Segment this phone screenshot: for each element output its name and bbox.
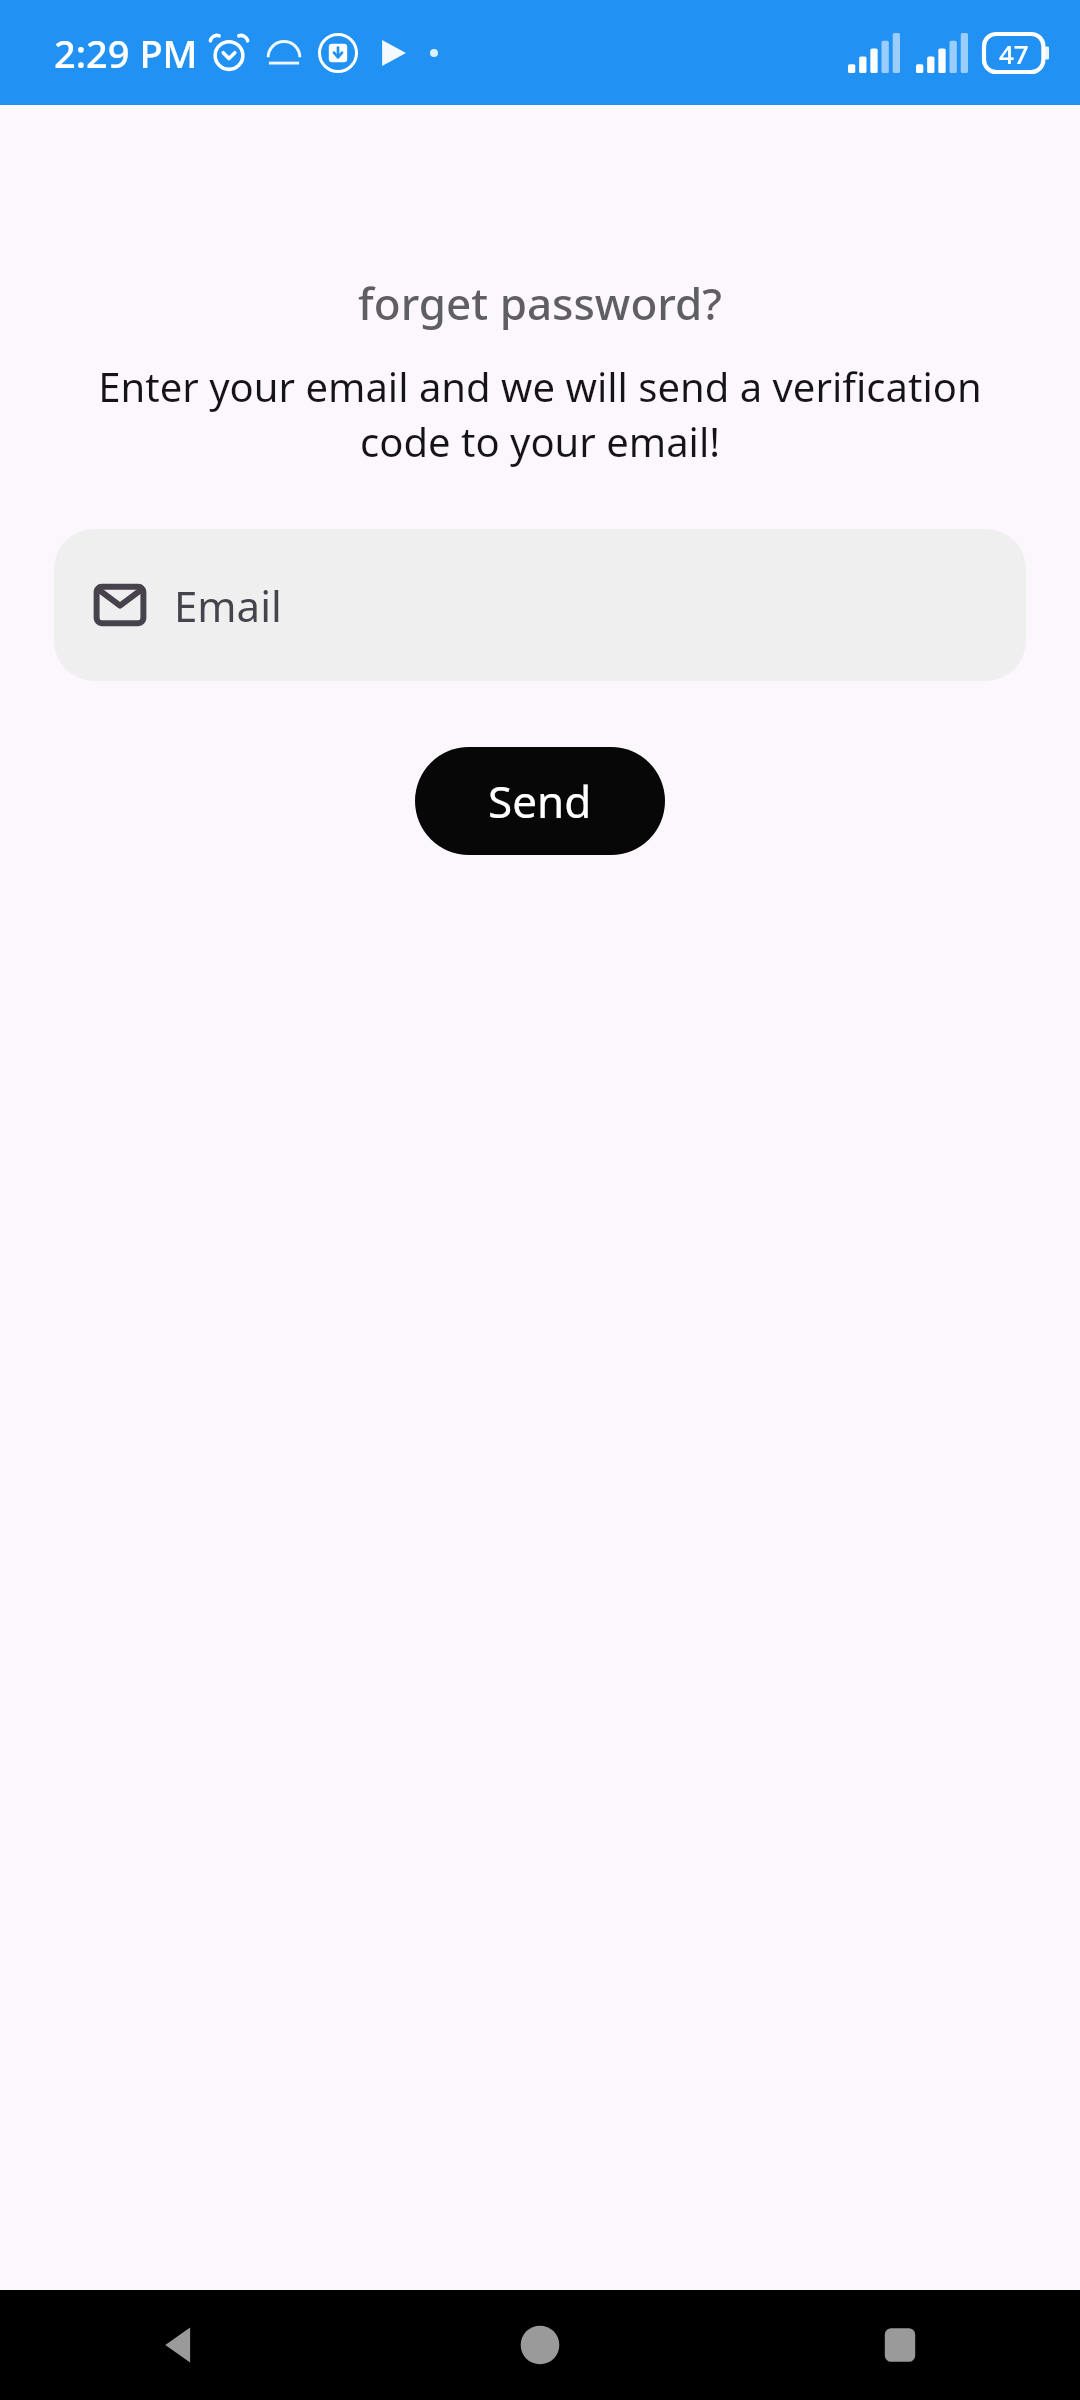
button[interactable]: Send xyxy=(415,747,665,855)
button[interactable]: Back xyxy=(0,2290,360,2400)
staticText: 2:29 PM xyxy=(54,27,198,79)
button[interactable]: Email xyxy=(54,529,1026,681)
staticText: Enter your email and we will send a veri… xyxy=(54,359,1026,469)
staticText: forget password? xyxy=(358,273,722,333)
staticText: 47 xyxy=(999,36,1029,71)
button[interactable]: Recent apps xyxy=(720,2290,1080,2400)
button[interactable]: Home xyxy=(360,2290,720,2400)
staticText: Send xyxy=(488,771,592,831)
staticText: Email xyxy=(174,577,282,634)
